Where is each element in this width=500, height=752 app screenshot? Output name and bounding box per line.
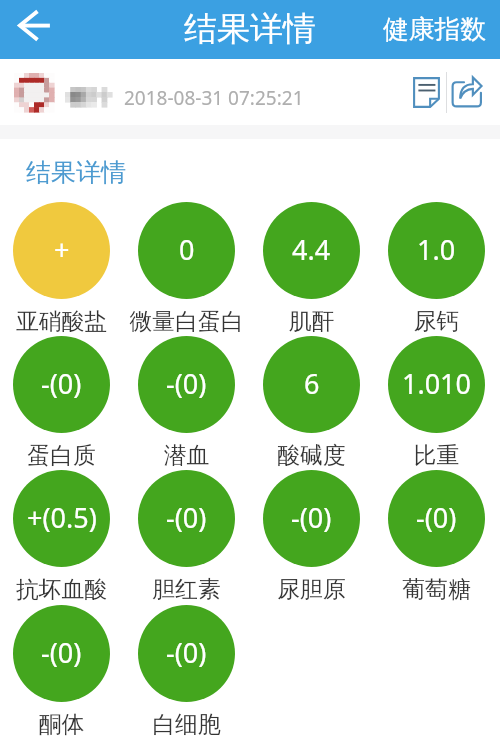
staticText: 微量白蛋白 (124, 307, 249, 336)
button[interactable]: 0 (124, 202, 249, 334)
staticText: 2018-08-31 07:25:21 (124, 85, 304, 111)
staticText: 1.010 (402, 365, 472, 402)
staticText: 尿钙 (374, 307, 499, 336)
staticText: +(0.5) (27, 499, 97, 536)
staticText: 结果详情 (184, 8, 316, 50)
button[interactable]: -(0) (0, 336, 124, 468)
button[interactable]: 6 (249, 336, 374, 468)
staticText: 抗坏血酸 (0, 575, 124, 604)
button[interactable]: -(0) (124, 336, 249, 468)
staticText: 尿胆原 (249, 575, 374, 604)
button[interactable]: 4.4 (249, 202, 374, 334)
staticText: 葡萄糖 (374, 575, 499, 604)
staticText: 潜血 (124, 441, 249, 470)
staticText: 比重 (374, 441, 499, 470)
staticText: 健康指数 (383, 13, 487, 46)
staticText: 亚硝酸盐 (0, 307, 124, 336)
staticText: + (54, 231, 70, 268)
button[interactable]: -(0) (124, 605, 249, 737)
button[interactable]: 1.010 (374, 336, 499, 468)
staticText: 4.4 (292, 231, 331, 268)
button[interactable]: -(0) (374, 470, 499, 602)
staticText: 酮体 (0, 710, 124, 739)
button[interactable]: 1.0 (374, 202, 499, 334)
button[interactable]: Share (447, 64, 500, 120)
staticText: -(0) (166, 365, 207, 402)
staticText: 胆红素 (124, 575, 249, 604)
staticText: -(0) (41, 634, 82, 671)
button[interactable]: -(0) (249, 470, 374, 602)
staticText: -(0) (416, 499, 457, 536)
staticText: -(0) (291, 499, 332, 536)
staticText: 白细胞 (124, 710, 249, 739)
button[interactable]: -(0) (124, 470, 249, 602)
staticText: -(0) (166, 499, 207, 536)
staticText: 6 (304, 365, 320, 402)
staticText: 1.0 (417, 231, 456, 268)
staticText: -(0) (41, 365, 82, 402)
button[interactable]: 健康指数 (383, 0, 487, 59)
staticText: 肌酐 (249, 307, 374, 336)
button[interactable]: Report (403, 64, 450, 120)
staticText: 蛋白质 (0, 441, 124, 470)
button[interactable]: + (0, 202, 124, 334)
staticText: 0 (179, 231, 195, 268)
button[interactable]: -(0) (0, 605, 124, 737)
button[interactable]: +(0.5) (0, 470, 124, 602)
staticText: -(0) (166, 634, 207, 671)
staticText: 酸碱度 (249, 441, 374, 470)
staticText: 结果详情 (26, 157, 126, 188)
button[interactable]: Back (0, 0, 68, 59)
